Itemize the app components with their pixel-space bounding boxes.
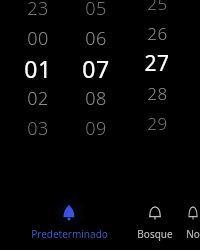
staticText: 05 xyxy=(85,0,107,21)
button[interactable]: Día 28 xyxy=(134,78,180,108)
button[interactable]: Hora 01 xyxy=(15,53,61,83)
button[interactable]: Bosque xyxy=(124,188,186,250)
button[interactable]: Predeterminado xyxy=(14,188,124,250)
button[interactable]: Día 29 xyxy=(134,108,180,138)
staticText: 09 xyxy=(85,116,107,141)
button[interactable]: Minuto 06 xyxy=(73,23,119,53)
button[interactable]: Minuto 09 xyxy=(73,113,119,143)
button[interactable]: Minuto 07 xyxy=(73,53,119,83)
staticText: 29 xyxy=(147,112,168,135)
staticText: 25 xyxy=(147,0,168,15)
staticText: Bosque xyxy=(137,227,173,241)
button[interactable]: Día 26 xyxy=(134,18,180,48)
staticText: 08 xyxy=(85,86,107,111)
staticText: 07 xyxy=(82,53,110,83)
button[interactable]: Hora 02 xyxy=(15,83,61,113)
staticText: 26 xyxy=(147,22,168,45)
button[interactable]: Hora 23 xyxy=(15,0,61,23)
button[interactable]: Minuto 05 xyxy=(73,0,119,23)
staticText: 02 xyxy=(27,86,49,111)
staticText: 01 xyxy=(24,53,52,83)
button[interactable]: Nocturno xyxy=(186,188,200,250)
button[interactable]: Día 25 xyxy=(134,0,180,18)
button[interactable]: Hora 00 xyxy=(15,23,61,53)
staticText: 27 xyxy=(144,49,170,78)
button[interactable]: Hora 03 xyxy=(15,113,61,143)
staticText: 03 xyxy=(27,116,49,141)
staticText: 23 xyxy=(27,0,49,21)
button[interactable]: Día 27 xyxy=(134,48,180,78)
staticText: 28 xyxy=(147,82,168,105)
button[interactable]: Minuto 08 xyxy=(73,83,119,113)
staticText: 00 xyxy=(27,26,49,51)
staticText: Nocturno xyxy=(186,227,200,241)
staticText: Predeterminado xyxy=(31,227,108,241)
staticText: 06 xyxy=(85,26,107,51)
